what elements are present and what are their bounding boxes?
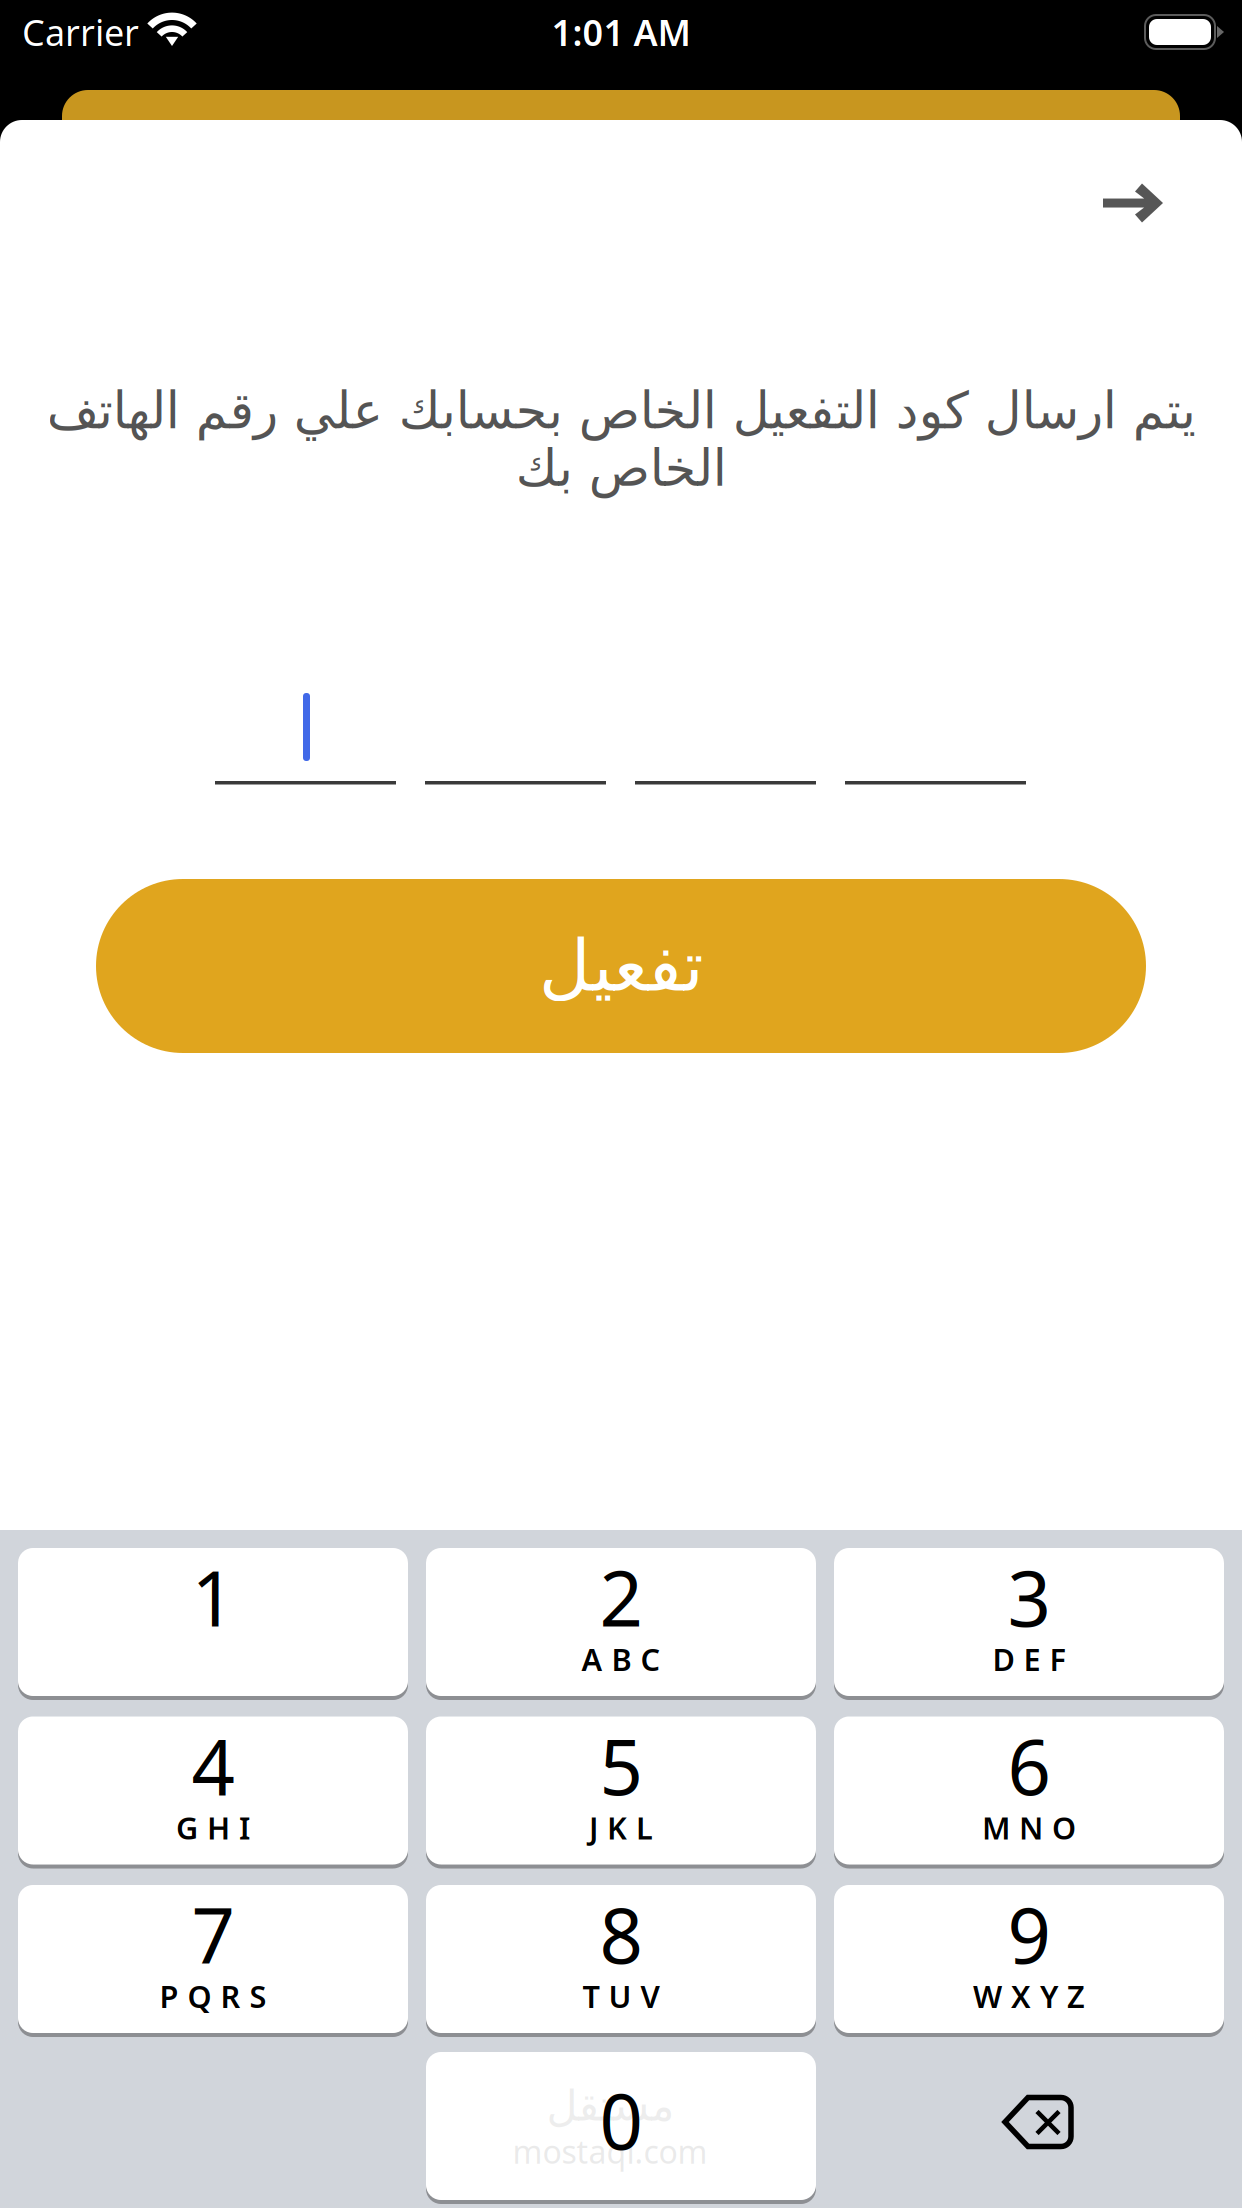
staticText: TUV	[582, 1976, 659, 2016]
button[interactable]: 5	[426, 1716, 816, 1866]
staticText: JKL	[589, 1807, 653, 1848]
button[interactable]: Delete	[844, 2049, 1234, 2197]
staticText: 4	[191, 1715, 234, 1816]
button[interactable]: 7	[18, 1885, 408, 2035]
button[interactable]: 3	[834, 1548, 1224, 1698]
staticText: 0	[599, 2069, 642, 2170]
button[interactable]: 2	[426, 1548, 816, 1698]
staticText: Carrier	[22, 8, 139, 56]
staticText: 3	[1007, 1546, 1050, 1647]
button[interactable]: 9	[834, 1885, 1224, 2035]
staticText: DEF	[992, 1639, 1065, 1679]
button[interactable]: تفعيل	[96, 879, 1146, 1053]
button[interactable]: 6	[834, 1716, 1224, 1866]
staticText: 2	[599, 1546, 642, 1647]
staticText: WXYZ	[973, 1976, 1085, 2016]
staticText: mostaql.com	[512, 2130, 707, 2172]
button[interactable]: Next	[1073, 153, 1193, 253]
staticText: 6	[1007, 1715, 1050, 1816]
staticText: GHI	[176, 1807, 250, 1848]
staticText: 7	[191, 1883, 234, 1984]
button[interactable]: 4	[18, 1716, 408, 1866]
staticText: 1:01 AM	[551, 8, 690, 56]
staticText: يتم ارسال كود التفعيل الخاص بحسابك علي ر…	[46, 382, 1195, 497]
button[interactable]: مستقل	[426, 2052, 816, 2202]
staticText: 8	[599, 1883, 642, 1984]
staticText: تفعيل	[538, 926, 703, 1006]
staticText: 5	[599, 1715, 642, 1816]
staticText: MNO	[982, 1807, 1076, 1848]
button[interactable]: 8	[426, 1885, 816, 2035]
staticText: مستقل	[546, 2081, 674, 2130]
staticText: 9	[1007, 1883, 1050, 1984]
staticText: PQRS	[159, 1976, 266, 2016]
button[interactable]: 1	[18, 1548, 408, 1698]
staticText: ABC	[581, 1639, 660, 1679]
staticText: 1	[191, 1546, 234, 1647]
